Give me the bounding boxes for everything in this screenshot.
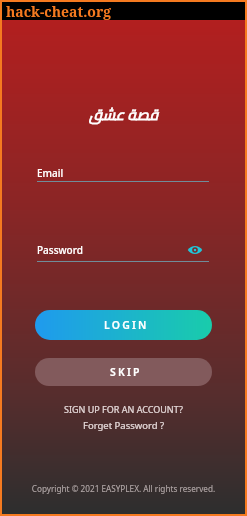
staticText: hack-cheat.org: [6, 2, 112, 20]
staticText: Forget Password ?: [83, 419, 165, 432]
button[interactable]: Show password: [187, 242, 203, 258]
button[interactable]: Forget Password ?: [2, 419, 245, 432]
staticText: Email: [37, 166, 64, 180]
staticText: Copyright © 2021 EASYPLEX. All rights re…: [2, 483, 245, 494]
staticText: SIGN UP FOR AN ACCOUNT?: [64, 403, 183, 415]
staticText: SKIP: [110, 365, 142, 379]
button[interactable]: SKIP: [35, 358, 212, 386]
staticText: Password: [37, 243, 187, 257]
button[interactable]: LOGIN: [35, 310, 212, 340]
staticText: LOGIN: [104, 318, 149, 332]
staticText: قصة عشق: [2, 100, 245, 128]
button[interactable]: SIGN UP FOR AN ACCOUNT?: [2, 403, 245, 415]
